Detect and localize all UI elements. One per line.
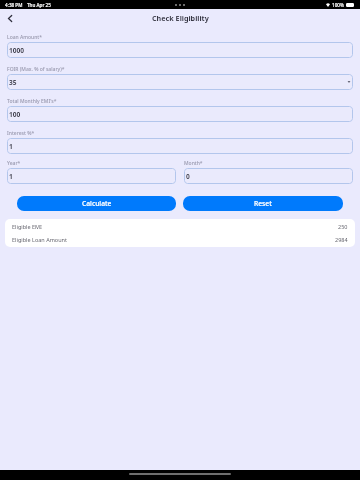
staticText: Eligible EMI bbox=[12, 223, 42, 230]
button[interactable]: Eligible EMI bbox=[12, 220, 348, 233]
staticText: Month* bbox=[184, 160, 203, 167]
staticText: 0 bbox=[186, 172, 190, 181]
button[interactable]: 1 bbox=[7, 138, 353, 154]
staticText: 250 bbox=[338, 223, 348, 230]
staticText: Total Monthly EMI's* bbox=[7, 98, 57, 105]
staticText: Thu Apr 25 bbox=[27, 2, 51, 8]
staticText: Year* bbox=[7, 160, 21, 167]
staticText: 2984 bbox=[335, 236, 348, 243]
button[interactable]: 35 bbox=[7, 74, 353, 90]
button[interactable]: Calculate bbox=[17, 196, 176, 211]
staticText: Eligible Loan Amount bbox=[12, 236, 67, 243]
button[interactable]: Back bbox=[2, 11, 17, 26]
button[interactable]: Reset bbox=[183, 196, 343, 211]
staticText: 100 bbox=[9, 110, 21, 119]
staticText: 1000 bbox=[9, 46, 25, 55]
staticText: Reset bbox=[254, 199, 272, 208]
staticText: Loan Amount* bbox=[7, 34, 43, 41]
staticText: Calculate bbox=[82, 199, 112, 208]
staticText: 35 bbox=[9, 78, 17, 87]
button[interactable]: 0 bbox=[184, 168, 353, 184]
button[interactable]: 100 bbox=[7, 106, 353, 122]
staticText: 100% bbox=[332, 2, 344, 8]
staticText: 1 bbox=[9, 172, 13, 181]
button[interactable]: 1 bbox=[7, 168, 176, 184]
button[interactable]: 1000 bbox=[7, 42, 353, 58]
staticText: Interest %* bbox=[7, 130, 35, 137]
button[interactable]: Eligible Loan Amount bbox=[12, 233, 348, 246]
staticText: Check Eligibility bbox=[152, 13, 209, 23]
staticText: FOIR (Max. % of salary)* bbox=[7, 66, 65, 73]
staticText: 1 bbox=[9, 142, 13, 151]
staticText: 4:38 PM bbox=[5, 2, 23, 8]
